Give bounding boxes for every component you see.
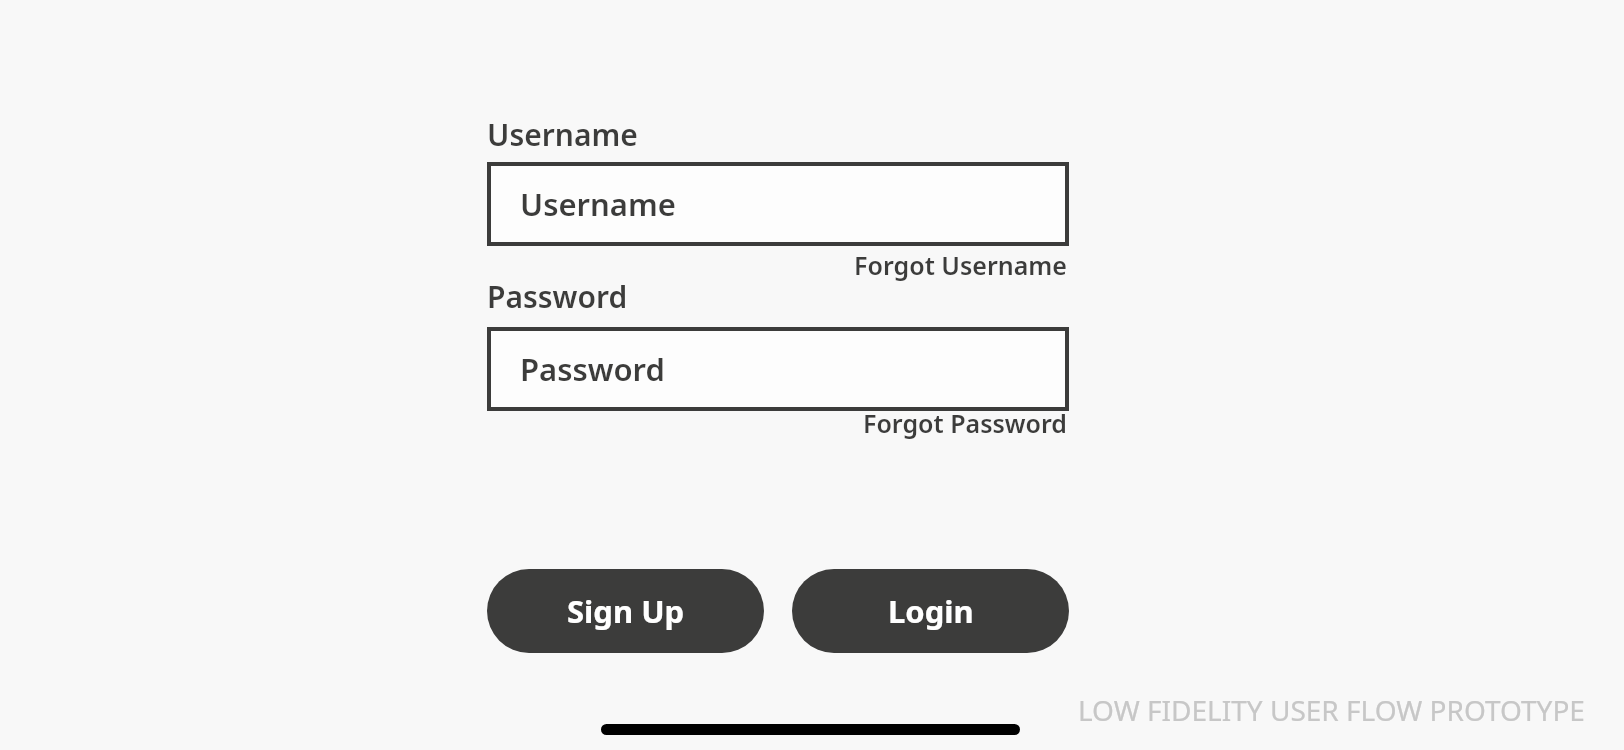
button[interactable]: Login [792, 569, 1069, 653]
staticText: LOW FIDELITY USER FLOW PROTOTYPE [1078, 691, 1585, 729]
staticText: Username [520, 183, 676, 225]
button[interactable]: Forgot Password [860, 405, 1069, 441]
staticText: Username [487, 114, 638, 155]
button[interactable]: Password [487, 327, 1069, 411]
button[interactable]: Sign Up [487, 569, 764, 653]
button[interactable]: Forgot Username [852, 247, 1069, 283]
staticText: Password [520, 348, 665, 390]
staticText: Sign Up [567, 590, 685, 632]
staticText: Password [487, 276, 628, 317]
button[interactable]: Username [487, 162, 1069, 246]
staticText: Login [888, 590, 974, 632]
